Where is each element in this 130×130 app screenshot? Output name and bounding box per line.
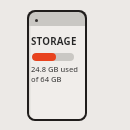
button[interactable]: Storage used 24.8 of 64 GB [32,53,74,61]
staticText: STORAGE [31,35,77,48]
staticText: 24.8 GB used [31,64,79,74]
staticText: of 64 GB [31,74,62,84]
button[interactable]: Device storage [27,10,87,121]
